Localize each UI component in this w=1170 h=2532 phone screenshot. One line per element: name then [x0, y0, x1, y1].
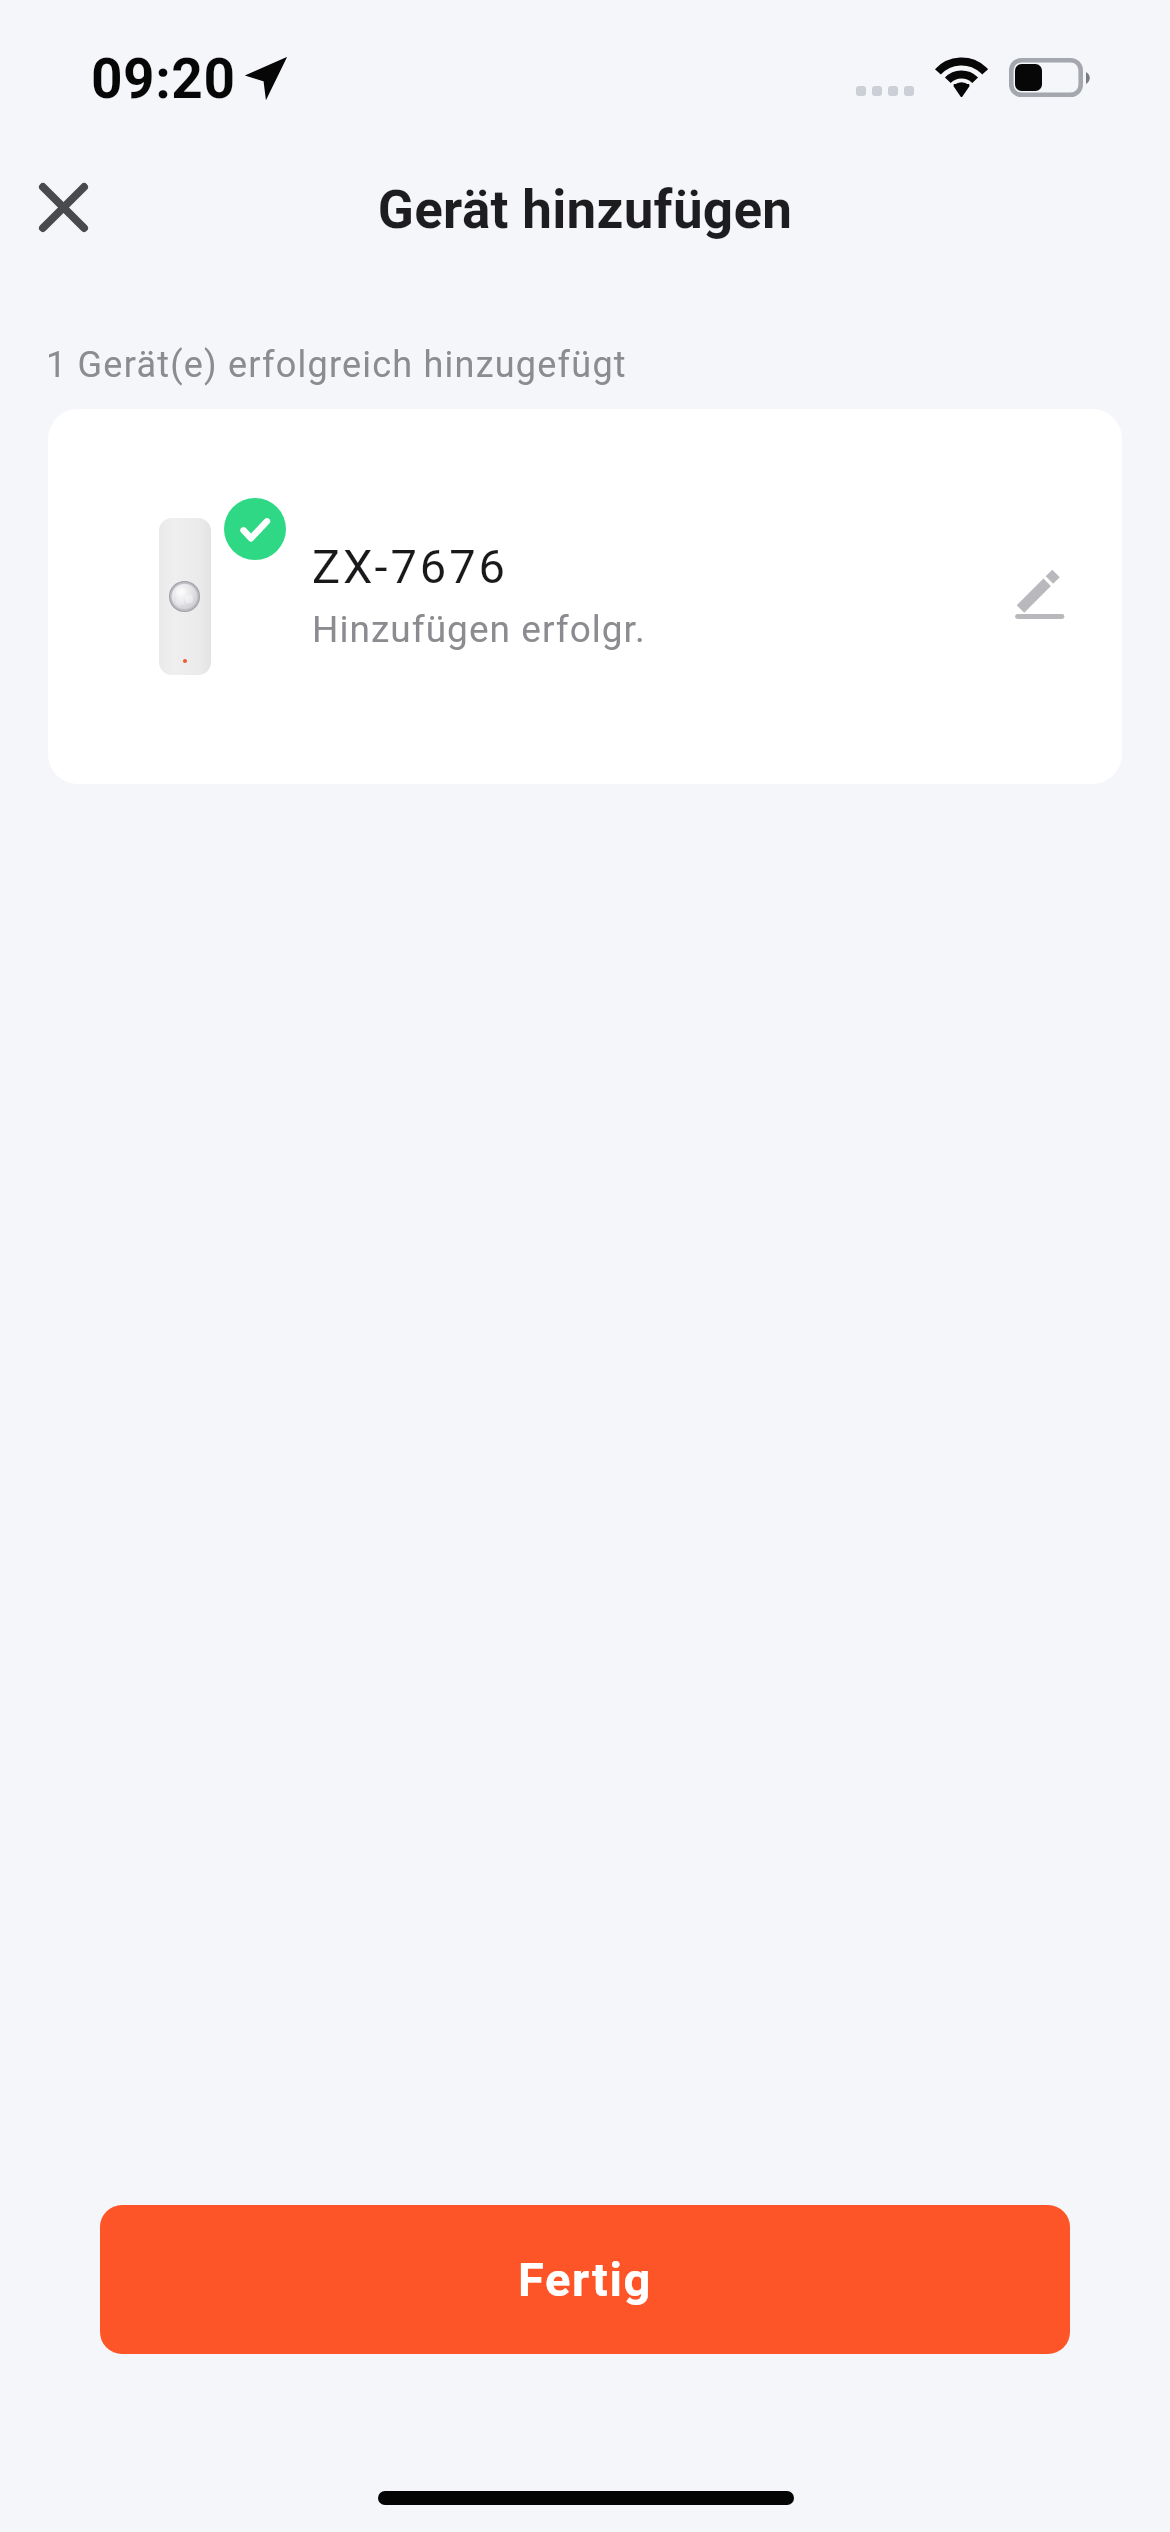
staticText: 1 Gerät(e) erfolgreich hinzugefügt — [46, 344, 627, 386]
staticText: ZX-7676 — [312, 539, 508, 594]
button[interactable]: Rename device — [990, 543, 1094, 647]
staticText: Gerät hinzufügen — [0, 179, 1170, 241]
button[interactable]: Close — [11, 155, 116, 260]
staticText: Fertig — [518, 2252, 653, 2307]
staticText: 09:20 — [91, 47, 236, 111]
button[interactable]: Fertig — [100, 2205, 1070, 2354]
staticText: Hinzufügen erfolgr. — [312, 608, 646, 651]
button[interactable]: ZX-7676 — [48, 409, 1122, 784]
